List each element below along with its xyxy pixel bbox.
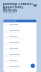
staticText: Smart replies, instant — [3, 12, 16, 14]
button[interactable]: New conversation — [31, 64, 35, 68]
staticText: Conversations — [5, 20, 17, 22]
staticText: Automate Customer — [3, 2, 33, 6]
button[interactable] — [3, 64, 36, 70]
button[interactable] — [3, 22, 36, 28]
button[interactable] — [3, 52, 36, 58]
button[interactable] — [3, 46, 36, 52]
staticText: Support Today — [3, 5, 24, 9]
button[interactable] — [3, 28, 36, 34]
button[interactable] — [3, 34, 36, 40]
button[interactable] — [3, 58, 36, 64]
button[interactable] — [3, 40, 36, 46]
staticText: Effortlessly — [3, 9, 18, 12]
button[interactable]: Menu — [33, 4, 37, 6]
